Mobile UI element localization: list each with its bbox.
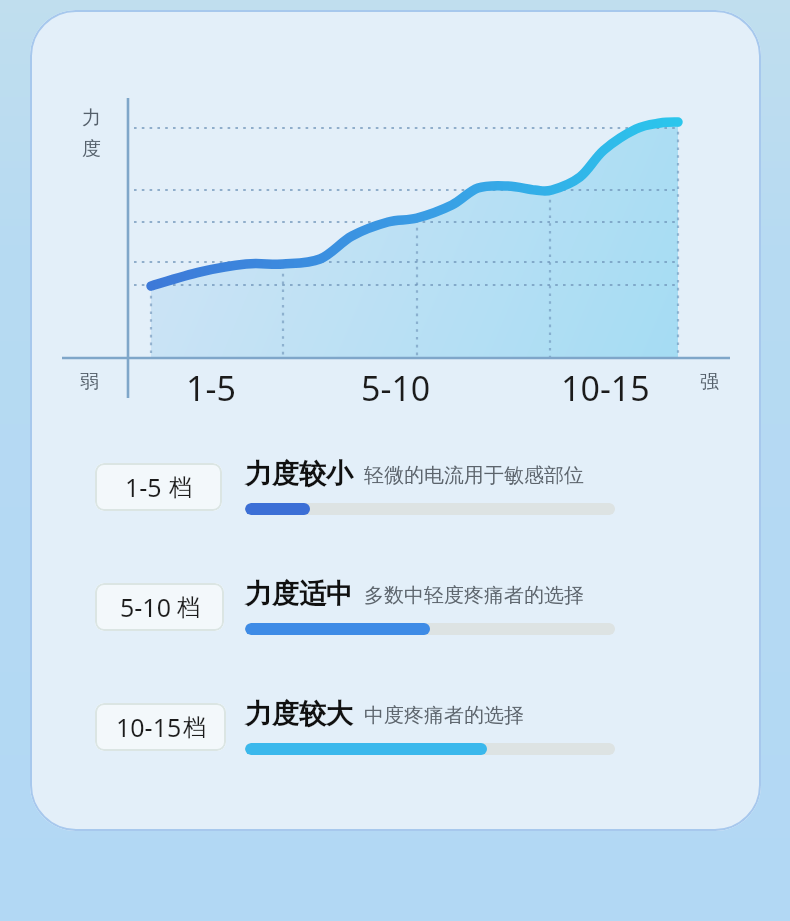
button[interactable]: 1-5 [95,463,222,511]
staticText: 力度较小 [245,457,353,491]
staticText: 度 [82,137,101,161]
staticText: 轻微的电流用于敏感部位 [364,463,584,488]
staticText: 强 [700,370,719,394]
staticText: 10-15 [561,365,650,411]
button[interactable]: 1-5 [80,451,640,543]
staticText: 档 [183,713,206,742]
staticText: 弱 [80,370,99,394]
staticText: 档 [177,593,200,622]
button[interactable]: 10-15 [95,703,226,751]
staticText: 力度适中 [245,577,353,611]
button[interactable]: 10-15 [80,691,640,783]
staticText: 中度疼痛者的选择 [364,703,524,728]
staticText: 1-5 [186,365,236,411]
staticText: 5-10 [361,365,431,411]
button[interactable]: 5-10 [95,583,224,631]
staticText: 10-15 [116,710,182,744]
button[interactable]: 5-10 [80,571,640,663]
staticText: 5-10 [120,590,171,624]
staticText: 力度较大 [245,697,353,731]
staticText: 多数中轻度疼痛者的选择 [364,583,584,608]
staticText: 1-5 [125,470,162,504]
staticText: 档 [169,473,192,502]
staticText: 力 [82,106,101,130]
